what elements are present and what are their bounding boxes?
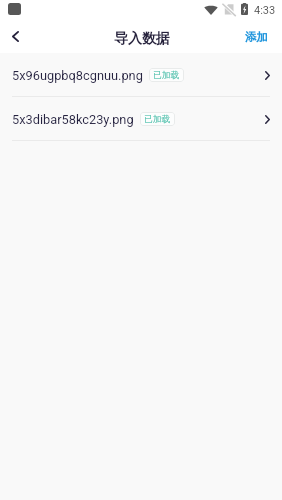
- button[interactable]: Back: [0, 24, 29, 53]
- staticText: 4:33: [254, 4, 276, 17]
- staticText: 添加: [245, 30, 268, 44]
- staticText: 已加载: [144, 114, 171, 125]
- staticText: 5x3dibar58kc23y.png: [12, 112, 134, 127]
- button[interactable]: 5x96ugpbq8cgnuu.png: [0, 53, 282, 96]
- staticText: 导入数据: [114, 30, 170, 48]
- button[interactable]: 5x3dibar58kc23y.png: [0, 97, 282, 140]
- button[interactable]: 添加: [230, 27, 282, 51]
- staticText: 已加载: [153, 70, 180, 81]
- staticText: 5x96ugpbq8cgnuu.png: [12, 68, 143, 83]
